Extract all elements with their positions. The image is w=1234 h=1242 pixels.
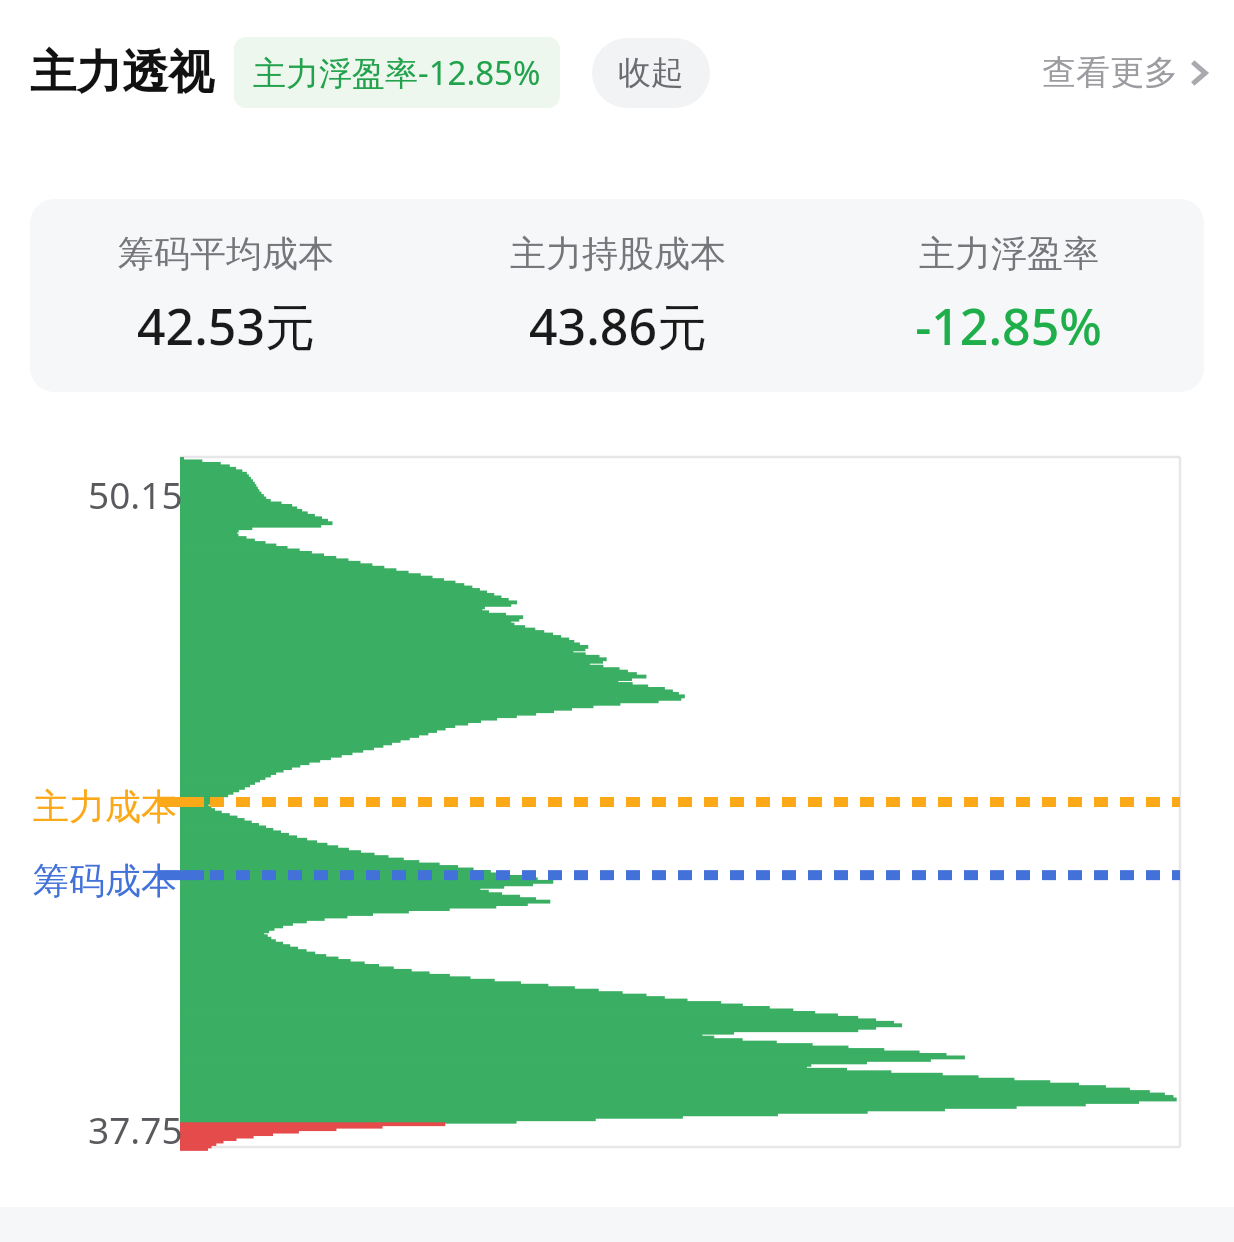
- staticText: 筹码成本: [33, 858, 177, 903]
- staticText: 主力浮盈率-12.85%: [253, 50, 541, 95]
- button[interactable]: 查看更多: [1042, 39, 1208, 106]
- staticText: 筹码平均成本: [118, 231, 334, 276]
- staticText: 50.15: [88, 469, 183, 519]
- staticText: 43.86元: [529, 292, 707, 360]
- staticText: 主力浮盈率: [919, 231, 1099, 276]
- staticText: 主力透视: [30, 44, 214, 102]
- staticText: 主力持股成本: [510, 231, 726, 276]
- button[interactable]: 筹码平均成本: [30, 199, 1204, 392]
- button[interactable]: 主力浮盈率-12.85%: [234, 37, 560, 108]
- other: 查看更多: [1190, 57, 1208, 89]
- staticText: 37.75: [88, 1104, 183, 1154]
- staticText: 查看更多: [1042, 51, 1178, 94]
- button[interactable]: 收起: [592, 38, 710, 108]
- staticText: 收起: [618, 52, 684, 94]
- staticText: 主力成本: [33, 784, 177, 829]
- staticText: -12.85%: [915, 292, 1102, 360]
- staticText: 42.53元: [137, 292, 315, 360]
